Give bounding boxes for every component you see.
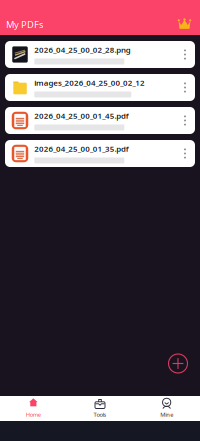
button[interactable]: 2026_04_25_00_01_35.pdf	[5, 140, 195, 167]
button[interactable]: Tools	[67, 396, 133, 421]
staticText: My PDFs	[6, 18, 43, 31]
button[interactable]: Home	[0, 396, 67, 421]
staticText: 2026_04_25_00_01_45.pdf	[34, 110, 129, 121]
button[interactable]: Premium	[178, 18, 191, 31]
staticText: Home	[26, 411, 41, 418]
button[interactable]: Add	[167, 352, 189, 374]
button[interactable]: 2026_04_25_00_01_45.pdf	[5, 107, 195, 134]
staticText: images_2026_04_25_00_02_12	[34, 77, 145, 88]
staticText: 2026_04_25_00_01_35.pdf	[34, 143, 129, 154]
staticText: Tools	[93, 411, 106, 418]
button[interactable]: 2026_04_25_00_02_28.png	[5, 41, 195, 68]
button[interactable]: images_2026_04_25_00_02_12	[5, 74, 195, 101]
staticText: Mine	[160, 411, 173, 418]
button[interactable]: Mine	[133, 396, 200, 421]
staticText: 2026_04_25_00_02_28.png	[34, 44, 131, 55]
